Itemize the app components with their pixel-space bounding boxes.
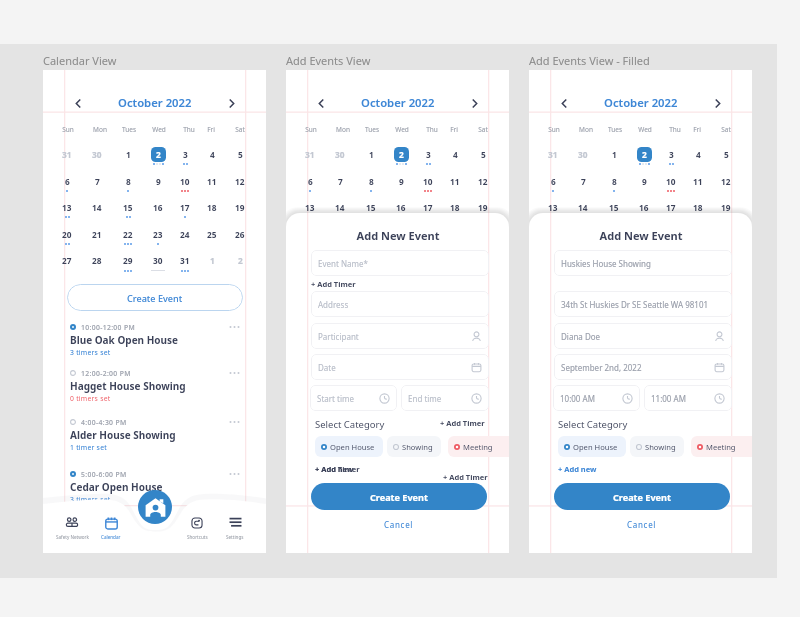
button[interactable]: Event Name*	[311, 250, 489, 276]
button[interactable]: 27	[57, 250, 77, 270]
button[interactable]: 30	[148, 250, 168, 270]
button[interactable]: 3	[661, 144, 681, 164]
button[interactable]: 5	[230, 144, 250, 164]
button[interactable]: 10	[175, 171, 195, 191]
button[interactable]: 5	[473, 144, 493, 164]
button[interactable]: Create Event	[554, 483, 730, 510]
button[interactable]: 16	[634, 197, 654, 217]
button[interactable]: 9	[391, 171, 411, 191]
button[interactable]: 12	[230, 171, 250, 191]
button[interactable]: 12:00-2:00 PM	[43, 365, 266, 409]
button[interactable]: 13	[57, 197, 77, 217]
button[interactable]: 1	[361, 144, 381, 164]
button[interactable]: 31	[57, 144, 77, 164]
button[interactable]: 31	[543, 144, 563, 164]
button[interactable]: 6	[57, 171, 77, 191]
button[interactable]: 4:00-4:30 PM	[43, 414, 266, 458]
button[interactable]: 15	[604, 197, 624, 217]
button[interactable]: End time	[401, 385, 489, 411]
button[interactable]: 10:00-12:00 PM	[43, 319, 266, 363]
button[interactable]: 3	[175, 144, 195, 164]
button[interactable]: 16	[391, 197, 411, 217]
button[interactable]: Meeting	[448, 436, 509, 457]
button[interactable]: 10	[418, 171, 438, 191]
button[interactable]: Shortcuts	[175, 514, 219, 538]
button[interactable]: 4	[688, 144, 708, 164]
button[interactable]: 31	[175, 250, 195, 270]
button[interactable]: 6	[543, 171, 563, 191]
button[interactable]: Add property visit	[138, 490, 172, 524]
button[interactable]: 6	[300, 171, 320, 191]
button[interactable]: 17	[661, 197, 681, 217]
button[interactable]: Calendar	[89, 514, 133, 538]
button[interactable]: Create Event	[67, 284, 243, 311]
button[interactable]: 20	[57, 224, 77, 244]
button[interactable]: 10	[661, 171, 681, 191]
button[interactable]: 30	[330, 144, 350, 164]
button[interactable]: Participant	[311, 323, 489, 349]
button[interactable]: 14	[87, 197, 107, 217]
button[interactable]: 26	[230, 224, 250, 244]
button[interactable]: 2	[391, 144, 411, 164]
button[interactable]: Next month	[465, 94, 483, 112]
button[interactable]: Safety Network	[50, 514, 94, 538]
button[interactable]: 13	[300, 197, 320, 217]
button[interactable]: Diana Doe	[554, 323, 732, 349]
button[interactable]: 14	[573, 197, 593, 217]
button[interactable]: 4	[445, 144, 465, 164]
button[interactable]: Open House	[558, 436, 626, 457]
button[interactable]: 9	[634, 171, 654, 191]
button[interactable]: 2	[634, 144, 654, 164]
button[interactable]: 4	[202, 144, 222, 164]
button[interactable]: Settings	[213, 514, 257, 538]
button[interactable]: 7	[330, 171, 350, 191]
button[interactable]: 2	[230, 250, 250, 270]
button[interactable]: 10:00 AM	[553, 385, 640, 411]
button[interactable]: Meeting	[691, 436, 752, 457]
button[interactable]: 7	[573, 171, 593, 191]
button[interactable]: 31	[300, 144, 320, 164]
button[interactable]: Address	[311, 291, 489, 317]
button[interactable]: 8	[361, 171, 381, 191]
button[interactable]: Showing	[630, 436, 684, 457]
button[interactable]: 19	[716, 197, 736, 217]
button[interactable]: Open House	[315, 436, 383, 457]
button[interactable]: 7	[87, 171, 107, 191]
button[interactable]: 28	[87, 250, 107, 270]
button[interactable]: Next month	[708, 94, 726, 112]
button[interactable]: 34th St Huskies Dr SE Seattle WA 98101	[554, 291, 732, 317]
button[interactable]: September 2nd, 2022	[554, 354, 732, 380]
button[interactable]: 11:00 AM	[644, 385, 732, 411]
button[interactable]: Cancel	[311, 516, 487, 532]
button[interactable]: 5:00-6:00 PM	[43, 466, 266, 510]
button[interactable]: 1	[118, 144, 138, 164]
button[interactable]: 19	[473, 197, 493, 217]
button[interactable]: 9	[148, 171, 168, 191]
button[interactable]: 18	[688, 197, 708, 217]
button[interactable]: Next month	[222, 94, 240, 112]
button[interactable]: 25	[202, 224, 222, 244]
button[interactable]: 18	[202, 197, 222, 217]
button[interactable]: 15	[361, 197, 381, 217]
button[interactable]: 30	[573, 144, 593, 164]
button[interactable]: Huskies House Showing	[554, 250, 732, 276]
button[interactable]: 13	[543, 197, 563, 217]
button[interactable]: 11	[445, 171, 465, 191]
button[interactable]: 29	[118, 250, 138, 270]
button[interactable]: Previous month	[69, 94, 87, 112]
button[interactable]: 30	[87, 144, 107, 164]
button[interactable]: 3	[418, 144, 438, 164]
button[interactable]: 2	[148, 144, 168, 164]
button[interactable]: 21	[87, 224, 107, 244]
button[interactable]: 16	[148, 197, 168, 217]
button[interactable]: 8	[604, 171, 624, 191]
button[interactable]: 23	[148, 224, 168, 244]
button[interactable]: 5	[716, 144, 736, 164]
button[interactable]: 17	[418, 197, 438, 217]
button[interactable]: 22	[118, 224, 138, 244]
button[interactable]: Showing	[387, 436, 441, 457]
button[interactable]: 18	[445, 197, 465, 217]
button[interactable]: Previous month	[555, 94, 573, 112]
button[interactable]: 12	[473, 171, 493, 191]
button[interactable]: 1	[202, 250, 222, 270]
